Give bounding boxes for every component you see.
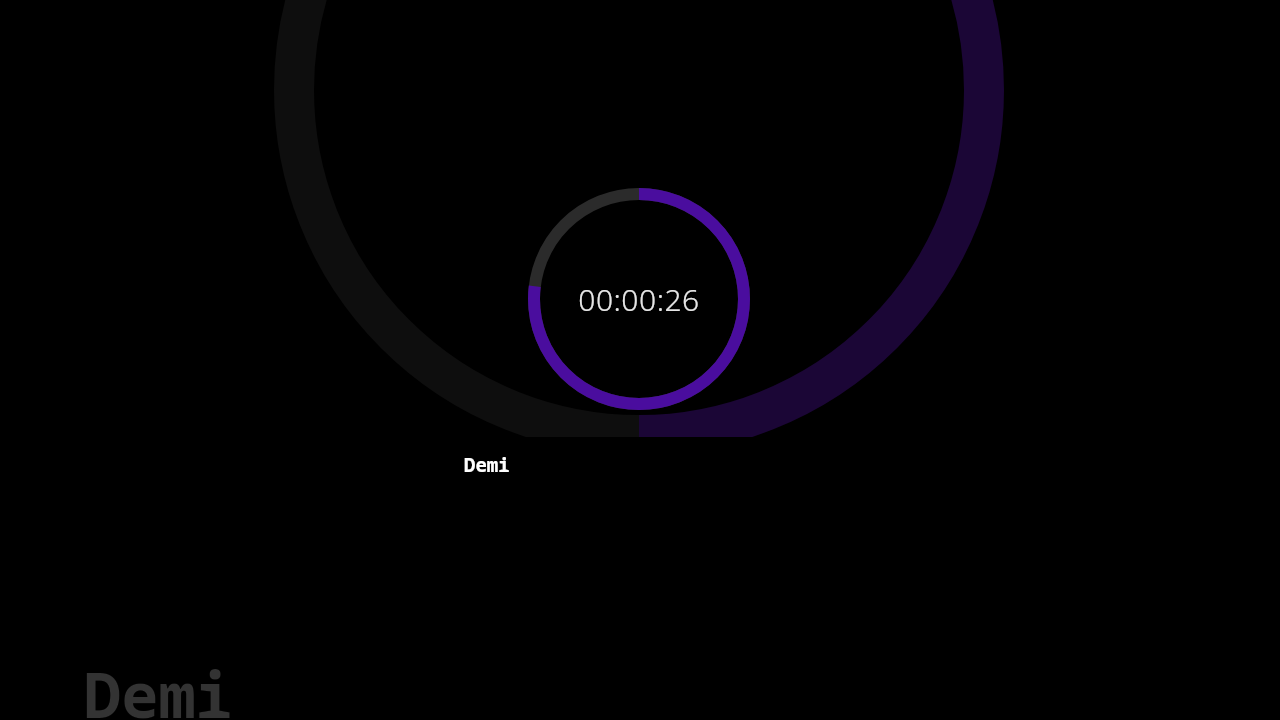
staticText: Demi <box>464 452 510 478</box>
staticText: Demi <box>84 652 233 720</box>
button[interactable]: Countdown timer progress <box>528 188 750 410</box>
staticText: 00:00:26 <box>578 279 700 320</box>
button[interactable]: Demi <box>464 452 510 478</box>
